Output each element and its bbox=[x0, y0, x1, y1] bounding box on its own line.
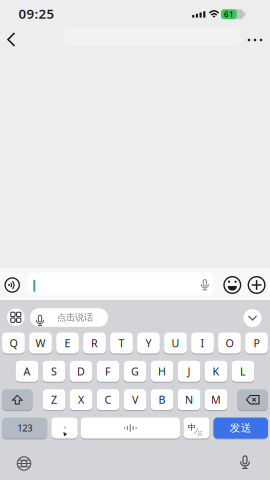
staticText: W bbox=[35, 336, 45, 350]
button[interactable] bbox=[183, 417, 209, 439]
button[interactable]: T bbox=[110, 332, 133, 354]
button[interactable]: M bbox=[205, 389, 227, 411]
button[interactable] bbox=[4, 277, 20, 293]
button[interactable]: I bbox=[191, 332, 214, 354]
staticText: D bbox=[77, 364, 85, 378]
button[interactable] bbox=[28, 273, 213, 295]
staticText: G bbox=[131, 364, 139, 378]
staticText: N bbox=[185, 393, 193, 407]
button[interactable]: F bbox=[97, 360, 119, 382]
staticText: K bbox=[212, 364, 219, 378]
button[interactable]: E bbox=[56, 332, 79, 354]
staticText: 09:25 bbox=[18, 5, 54, 22]
button[interactable] bbox=[81, 417, 180, 439]
button[interactable]: W bbox=[29, 332, 52, 354]
button[interactable]: 点击说话 bbox=[30, 308, 108, 327]
button[interactable]: K bbox=[205, 360, 227, 382]
staticText: A bbox=[23, 364, 30, 378]
button[interactable]: S bbox=[43, 360, 65, 382]
staticText: 英 bbox=[197, 430, 204, 438]
button[interactable]: H bbox=[151, 360, 173, 382]
staticText: S bbox=[51, 364, 57, 378]
button[interactable]: J bbox=[178, 360, 200, 382]
staticText: H bbox=[158, 364, 166, 378]
staticText: T bbox=[118, 336, 124, 350]
button[interactable] bbox=[223, 276, 242, 294]
button[interactable]: U bbox=[164, 332, 187, 354]
button[interactable]: R bbox=[83, 332, 106, 354]
staticText: 123 bbox=[17, 422, 32, 434]
button[interactable]: Y bbox=[137, 332, 160, 354]
button[interactable]: Z bbox=[43, 389, 65, 411]
button[interactable]: 123 bbox=[2, 417, 47, 439]
staticText: E bbox=[64, 336, 70, 350]
button[interactable] bbox=[237, 454, 252, 470]
staticText: X bbox=[78, 393, 84, 407]
button[interactable] bbox=[2, 389, 32, 411]
staticText: P bbox=[253, 336, 259, 350]
button[interactable] bbox=[244, 32, 266, 48]
staticText: C bbox=[104, 393, 111, 407]
staticText: Y bbox=[145, 336, 151, 350]
button[interactable]: A bbox=[16, 360, 38, 382]
button[interactable] bbox=[51, 417, 78, 439]
staticText: J bbox=[187, 364, 190, 378]
staticText: 61 bbox=[224, 9, 234, 19]
staticText: Z bbox=[51, 393, 57, 407]
button[interactable] bbox=[7, 309, 25, 326]
button[interactable]: B bbox=[151, 389, 173, 411]
staticText: U bbox=[171, 336, 179, 350]
button[interactable]: N bbox=[178, 389, 200, 411]
button[interactable]: C bbox=[97, 389, 119, 411]
staticText: 点击说话 bbox=[57, 312, 93, 323]
button[interactable] bbox=[17, 456, 31, 470]
button[interactable] bbox=[237, 389, 268, 411]
staticText: F bbox=[105, 364, 111, 378]
staticText: V bbox=[132, 393, 138, 407]
button[interactable] bbox=[6, 32, 22, 48]
button[interactable]: G bbox=[124, 360, 146, 382]
staticText: 中 bbox=[188, 422, 196, 432]
staticText: Q bbox=[9, 336, 17, 350]
staticText: I bbox=[200, 336, 204, 350]
button[interactable]: D bbox=[70, 360, 92, 382]
staticText: R bbox=[91, 336, 98, 350]
staticText: O bbox=[225, 336, 233, 350]
button[interactable]: Q bbox=[2, 332, 25, 354]
button[interactable]: L bbox=[232, 360, 254, 382]
staticText: M bbox=[211, 393, 221, 407]
staticText: 发送 bbox=[230, 421, 252, 434]
button[interactable] bbox=[243, 309, 261, 327]
button[interactable]: X bbox=[70, 389, 92, 411]
button[interactable]: 发送 bbox=[213, 417, 268, 439]
button[interactable] bbox=[247, 276, 266, 294]
button[interactable]: V bbox=[124, 389, 146, 411]
staticText: B bbox=[158, 393, 165, 407]
button[interactable]: O bbox=[218, 332, 241, 354]
staticText: L bbox=[240, 364, 246, 378]
button[interactable]: P bbox=[245, 332, 268, 354]
